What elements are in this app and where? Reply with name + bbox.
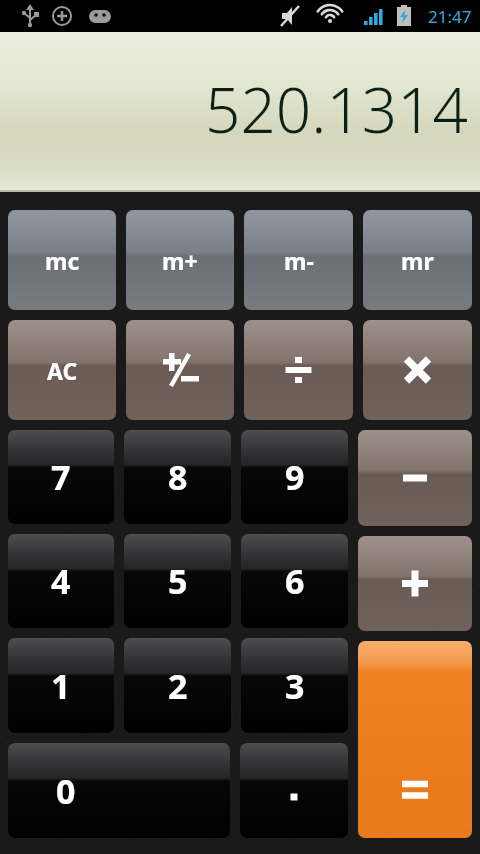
button[interactable]: mr — [363, 210, 472, 310]
button[interactable]: Plus — [358, 536, 472, 631]
staticText: 3 — [285, 663, 305, 709]
staticText: 2 — [168, 663, 188, 709]
staticText: 1 — [51, 663, 71, 709]
staticText: mc — [45, 245, 80, 276]
staticText: 21:47 — [428, 5, 472, 28]
button[interactable]: AC — [8, 320, 116, 420]
staticText: m+ — [162, 245, 198, 276]
button[interactable]: Minus — [358, 430, 472, 526]
button[interactable]: 1 — [8, 638, 114, 733]
staticText: 6 — [285, 558, 305, 604]
button[interactable]: 8 — [124, 430, 231, 524]
button[interactable]: 9 — [241, 430, 348, 524]
staticText: AC — [47, 355, 78, 386]
staticText: mr — [401, 245, 434, 276]
button[interactable]: m- — [244, 210, 353, 310]
staticText: 8 — [168, 454, 188, 500]
staticText: 9 — [285, 454, 305, 500]
staticText: 520.1314 — [205, 67, 468, 151]
button[interactable]: mc — [8, 210, 116, 310]
button[interactable]: 6 — [241, 534, 348, 628]
button[interactable]: 5 — [124, 534, 231, 628]
staticText: 4 — [51, 558, 71, 604]
button[interactable]: m+ — [126, 210, 234, 310]
button[interactable]: 0 — [8, 743, 230, 838]
button[interactable]: Multiply — [363, 320, 472, 420]
button[interactable]: Decimal point — [240, 743, 348, 838]
button[interactable]: Equals — [358, 641, 472, 838]
staticText: 5 — [168, 558, 188, 604]
button[interactable]: 7 — [8, 430, 114, 524]
button[interactable]: Divide — [244, 320, 353, 420]
button[interactable]: Plus minus — [126, 320, 234, 420]
staticText: 0 — [56, 768, 76, 814]
button[interactable]: 3 — [241, 638, 348, 733]
button[interactable]: 4 — [8, 534, 114, 628]
button[interactable]: 2 — [124, 638, 231, 733]
staticText: 7 — [51, 454, 71, 500]
staticText: m- — [284, 245, 314, 276]
